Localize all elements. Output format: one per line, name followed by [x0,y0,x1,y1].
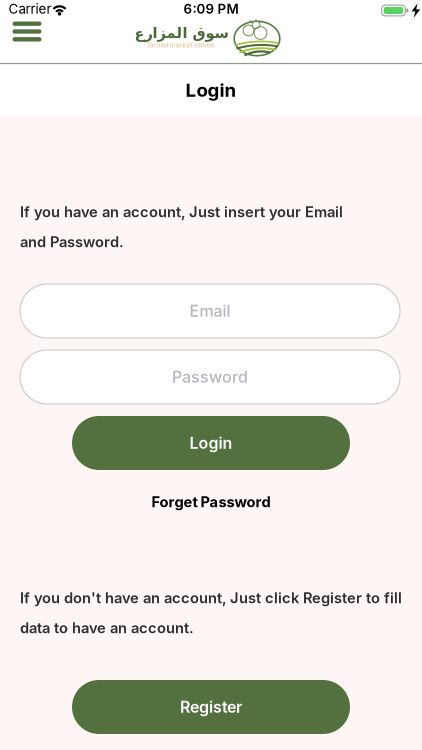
staticText: Forget Password [151,493,270,511]
staticText: Email [189,302,230,320]
button[interactable]: Forget Password [151,493,270,511]
button[interactable]: Login [72,416,350,470]
staticText: Login [189,434,232,452]
staticText: سوق المزارع [134,25,228,41]
staticText: Carrier [8,1,51,17]
staticText: Password [172,368,248,386]
staticText: Register [180,698,242,716]
staticText: data to have an account. [20,619,194,637]
button[interactable]: Register [72,680,350,734]
button[interactable]: Menu [7,15,47,47]
staticText: and Password. [20,233,124,251]
staticText: 6:09 PM [183,1,238,17]
staticText: If you don't have an account, Just click… [20,589,402,607]
staticText: If you have an account, Just insert your… [20,203,343,221]
staticText: Login [185,79,236,101]
staticText: farmermarket.online [147,41,214,49]
